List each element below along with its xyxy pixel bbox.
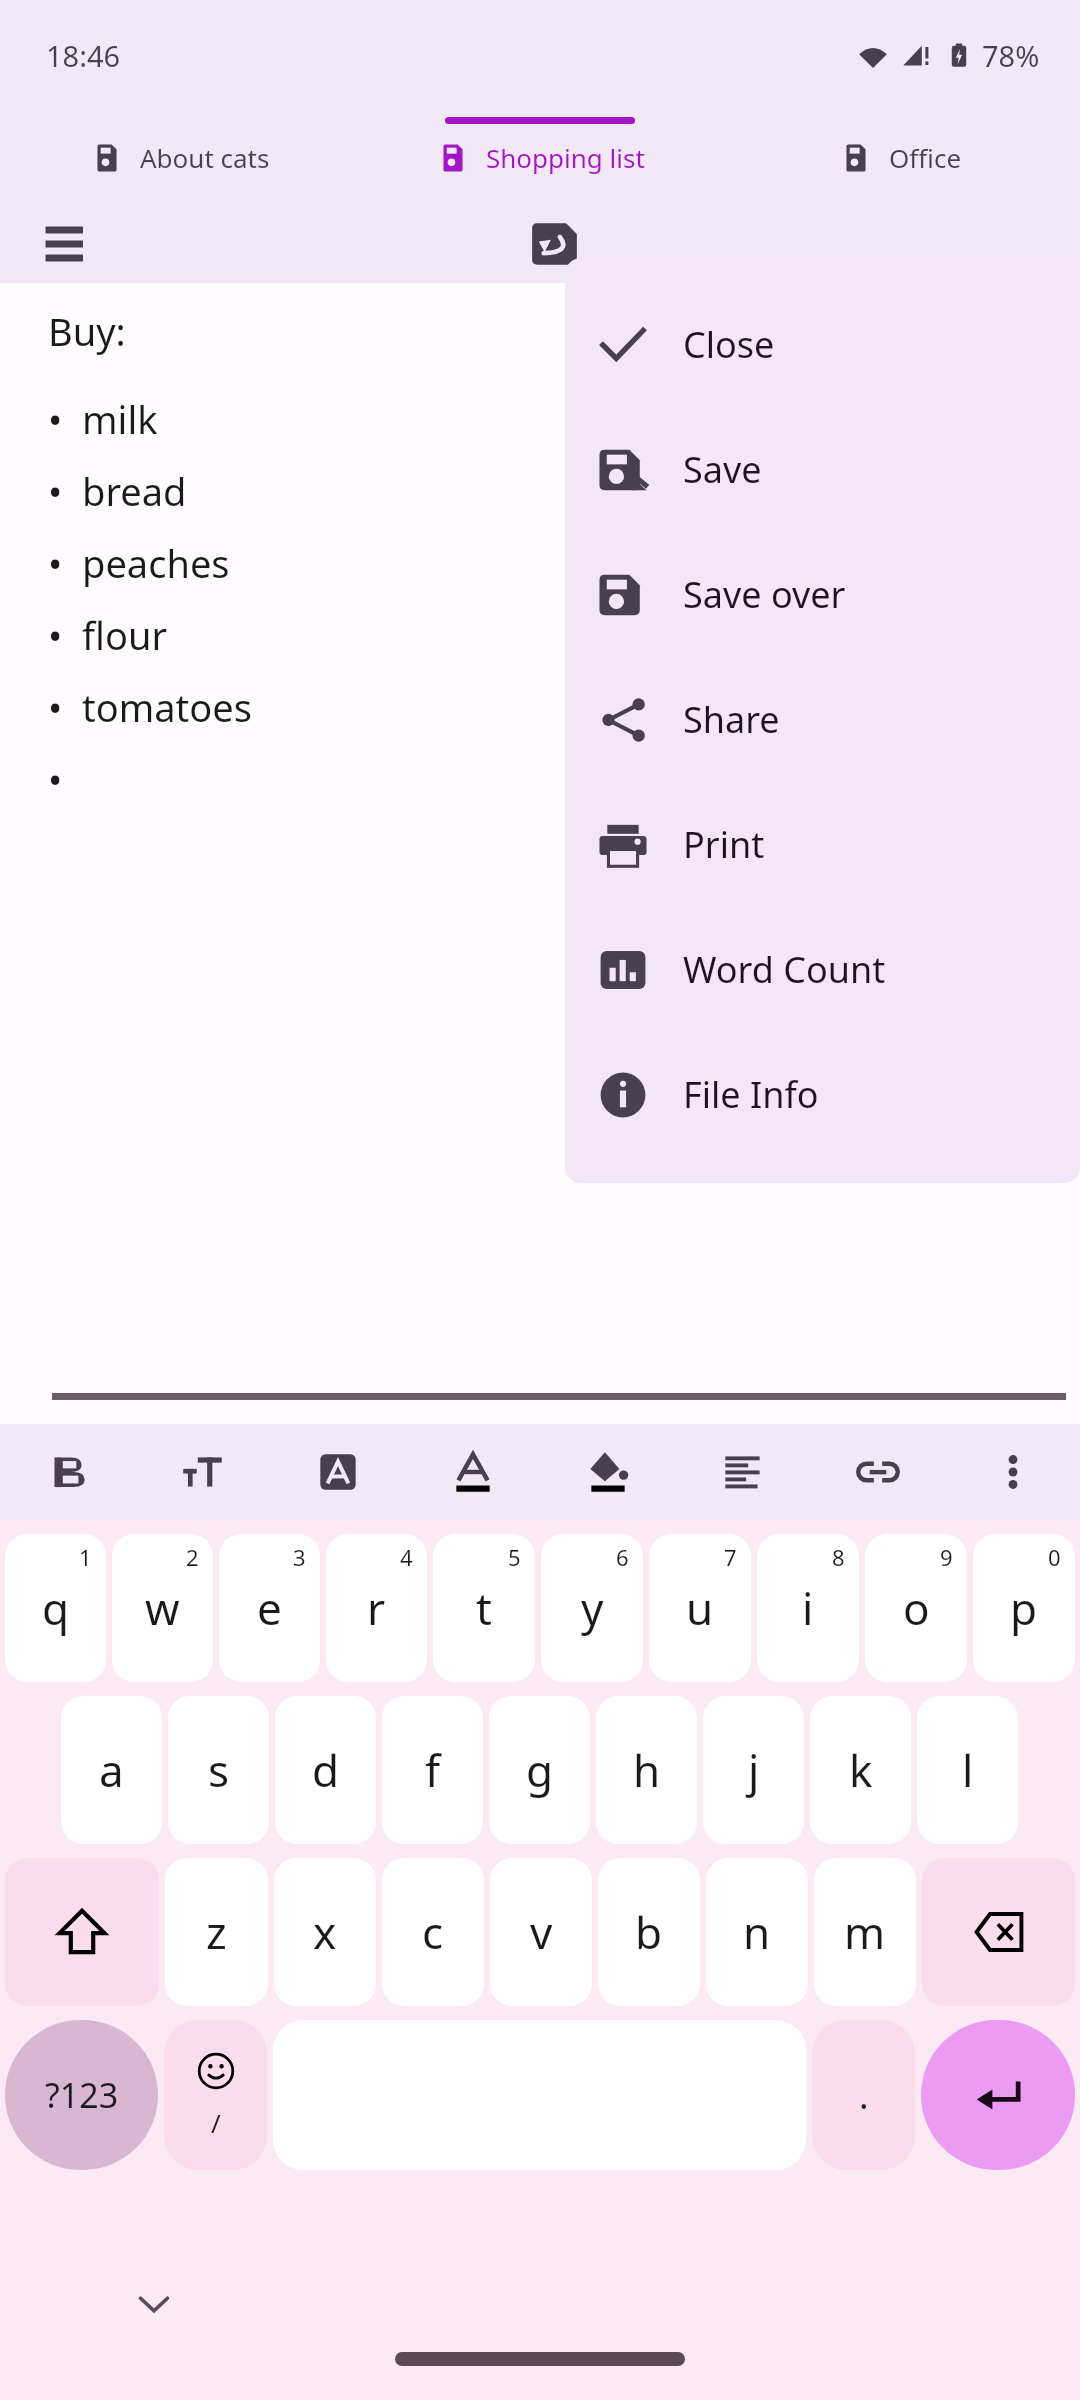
staticText: e	[257, 1578, 282, 1638]
staticText: j	[748, 1740, 760, 1800]
staticText: n	[743, 1902, 771, 1962]
button[interactable]: 8	[757, 1534, 859, 1682]
button[interactable]: d	[275, 1696, 376, 1844]
staticText: 4	[400, 1542, 413, 1572]
button[interactable]: 9	[865, 1534, 967, 1682]
button[interactable]: k	[810, 1696, 911, 1844]
staticText: l	[962, 1740, 974, 1800]
staticText: About cats	[140, 140, 270, 175]
staticText: • bread	[48, 465, 187, 517]
button[interactable]: Align	[675, 1424, 810, 1520]
button[interactable]: Save over	[565, 532, 1080, 657]
button[interactable]: Save	[565, 407, 1080, 532]
button[interactable]: 1	[5, 1534, 106, 1682]
button[interactable]: 3	[219, 1534, 320, 1682]
staticText: m	[844, 1902, 886, 1962]
button[interactable]: Emoji	[164, 2020, 267, 2170]
staticText: Shopping list	[486, 140, 645, 175]
staticText: 7	[724, 1542, 737, 1572]
button[interactable]: c	[382, 1858, 484, 2006]
button[interactable]: Shopping list	[360, 110, 720, 205]
button[interactable]: Bold	[0, 1424, 135, 1520]
button[interactable]: 5	[433, 1534, 535, 1682]
staticText: b	[635, 1902, 663, 1962]
staticText: • tomatoes	[48, 681, 252, 733]
button[interactable]: Backspace	[922, 1858, 1075, 2006]
button[interactable]: b	[598, 1858, 700, 2006]
button[interactable]: Text style	[270, 1424, 405, 1520]
button[interactable]: Print	[565, 782, 1080, 907]
button[interactable]: Undo	[529, 218, 581, 270]
button[interactable]: Link	[810, 1424, 945, 1520]
button[interactable]: 7	[649, 1534, 751, 1682]
button[interactable]: l	[917, 1696, 1018, 1844]
staticText: f	[425, 1740, 441, 1800]
staticText: • peaches	[48, 537, 230, 589]
button[interactable]: Shift	[5, 1858, 159, 2006]
staticText: Word Count	[683, 945, 886, 994]
staticText: q	[42, 1578, 70, 1638]
staticText: 3	[293, 1542, 306, 1572]
button[interactable]: About cats	[0, 110, 360, 205]
button[interactable]: Text color	[405, 1424, 540, 1520]
staticText: h	[633, 1740, 661, 1800]
staticText: x	[313, 1902, 337, 1962]
button[interactable]: n	[706, 1858, 808, 2006]
button[interactable]: j	[703, 1696, 804, 1844]
button[interactable]: s	[168, 1696, 269, 1844]
staticText: z	[206, 1902, 227, 1962]
staticText: 6	[616, 1542, 629, 1572]
button[interactable]: x	[274, 1858, 376, 2006]
button[interactable]: v	[490, 1858, 592, 2006]
button[interactable]: m	[814, 1858, 916, 2006]
button[interactable]: 2	[112, 1534, 213, 1682]
button[interactable]: Text size	[135, 1424, 270, 1520]
button[interactable]: .	[812, 2020, 915, 2170]
button[interactable]: Highlight color	[540, 1424, 675, 1520]
staticText: 18:46	[46, 36, 121, 75]
button[interactable]: Close	[565, 282, 1080, 407]
staticText: k	[849, 1740, 873, 1800]
staticText: .	[859, 2071, 869, 2120]
staticText: File Info	[683, 1070, 819, 1119]
staticText: Save over	[683, 570, 846, 619]
staticText: u	[686, 1578, 714, 1638]
button[interactable]: h	[596, 1696, 697, 1844]
staticText: r	[367, 1578, 386, 1638]
button[interactable]: Word Count	[565, 907, 1080, 1032]
button[interactable]: File Info	[565, 1032, 1080, 1157]
staticText: s	[208, 1740, 230, 1800]
staticText: • flour	[48, 609, 168, 661]
button[interactable]: Share	[565, 657, 1080, 782]
staticText: /	[211, 2105, 221, 2140]
button[interactable]: f	[382, 1696, 483, 1844]
button[interactable]: More options	[945, 1424, 1080, 1520]
staticText: Office	[889, 140, 962, 175]
staticText: 8	[832, 1542, 845, 1572]
button[interactable]: z	[165, 1858, 268, 2006]
staticText: Close	[683, 320, 775, 369]
staticText: d	[312, 1740, 340, 1800]
staticText: •	[48, 753, 63, 805]
staticText: p	[1010, 1578, 1038, 1638]
button[interactable]: Office	[720, 110, 1080, 205]
staticText: 5	[508, 1542, 521, 1572]
staticText: Save	[683, 445, 762, 494]
button[interactable]: Menu	[44, 218, 96, 270]
staticText: g	[526, 1740, 554, 1800]
button[interactable]: 0	[973, 1534, 1075, 1682]
button[interactable]: 4	[326, 1534, 427, 1682]
staticText: v	[530, 1902, 553, 1962]
staticText: 78%	[982, 36, 1040, 75]
staticText: y	[581, 1578, 604, 1638]
button[interactable]: Hide keyboard	[130, 2280, 178, 2328]
staticText: c	[422, 1902, 444, 1962]
button[interactable]: 6	[541, 1534, 643, 1682]
button[interactable]: g	[489, 1696, 590, 1844]
staticText: a	[99, 1740, 124, 1800]
button[interactable]: Enter	[921, 2020, 1075, 2170]
button[interactable]: a	[61, 1696, 162, 1844]
button[interactable]: ?123	[5, 2020, 158, 2170]
staticText: 2	[186, 1542, 199, 1572]
